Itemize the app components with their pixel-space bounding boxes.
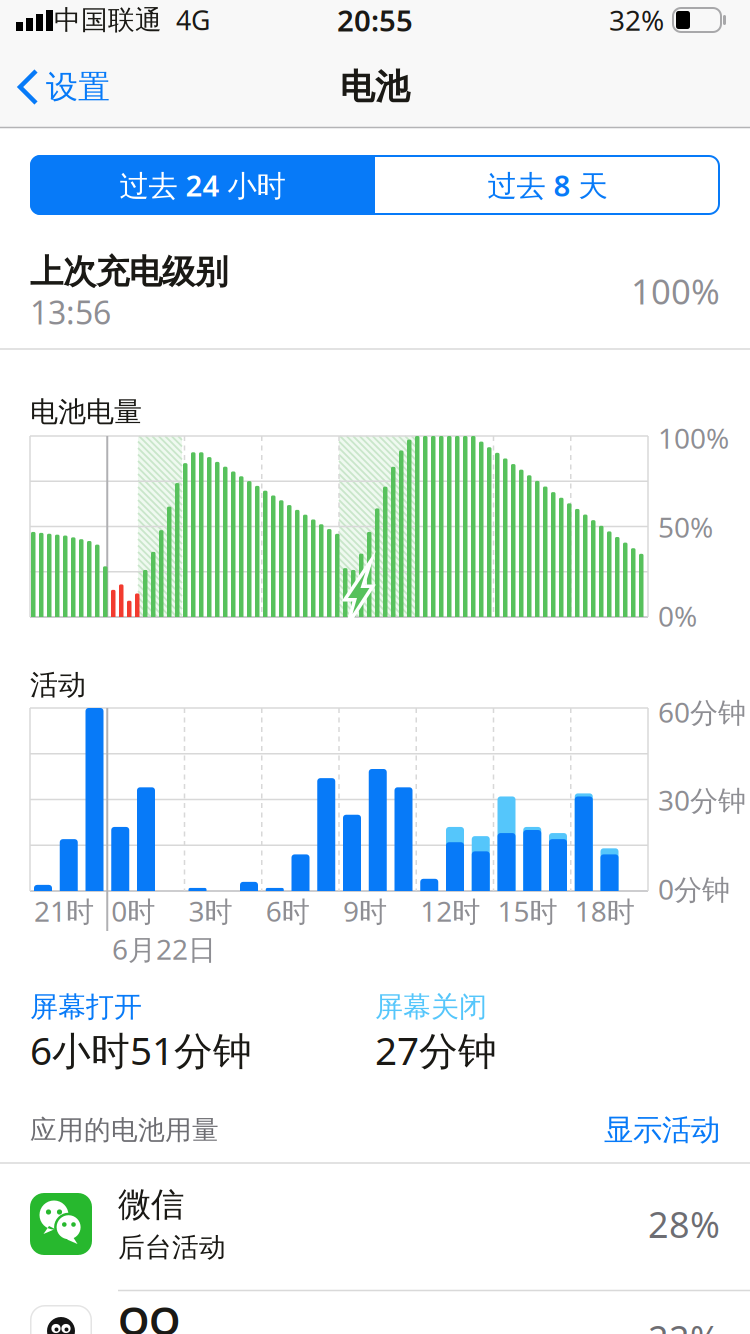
button[interactable]: 过去 8 天 (375, 155, 720, 215)
staticText: 过去 24 小时 (119, 165, 285, 204)
staticText: 显示活动 (604, 1112, 720, 1148)
button[interactable]: 显示活动 (560, 1105, 720, 1155)
button[interactable]: 微信 (0, 1160, 750, 1287)
button[interactable]: 返回设置 (16, 55, 166, 119)
staticText: 后台活动 (118, 1231, 226, 1264)
staticText: 电池电量 (30, 395, 142, 429)
staticText: 0分钟 (658, 870, 730, 908)
staticText: 0时 (111, 892, 155, 930)
staticText: 13:56 (30, 291, 111, 333)
staticText: 100% (658, 419, 729, 457)
staticText: 27分钟 (375, 1024, 497, 1076)
staticText: 上次充电级别 (30, 251, 228, 292)
staticText: 60分钟 (658, 693, 746, 731)
staticText: 18时 (575, 892, 635, 930)
staticText: 4G (176, 2, 210, 38)
staticText: 屏幕关闭 (375, 990, 487, 1024)
staticText: 6小时51分钟 (30, 1024, 252, 1076)
staticText: 50% (658, 508, 713, 546)
staticText: 电池 (340, 66, 410, 108)
staticText: 30分钟 (658, 781, 746, 819)
staticText: 12时 (420, 892, 480, 930)
staticText: 21时 (34, 892, 94, 930)
staticText: 28% (648, 1200, 720, 1248)
staticText: 中国联通 (54, 4, 162, 36)
staticText: 100% (631, 268, 720, 314)
staticText: 32% (609, 1, 664, 39)
staticText: 6月22日 (112, 930, 216, 968)
staticText: 过去 8 天 (487, 165, 607, 204)
button[interactable]: 过去 24 小时 (30, 155, 375, 215)
staticText: 3时 (188, 892, 232, 930)
staticText: 设置 (46, 67, 110, 107)
staticText: 屏幕打开 (30, 990, 142, 1024)
staticText: 22% (648, 1314, 720, 1334)
staticText: 活动 (30, 668, 86, 702)
staticText: 微信 (118, 1184, 184, 1225)
staticText: 0% (658, 597, 697, 635)
staticText: QQ (118, 1293, 180, 1334)
staticText: 15时 (497, 892, 557, 930)
staticText: 9时 (343, 892, 387, 930)
staticText: 应用的电池用量 (30, 1114, 219, 1146)
button[interactable]: QQ (0, 1271, 750, 1334)
staticText: 6时 (266, 892, 310, 930)
staticText: 20:55 (337, 0, 413, 39)
